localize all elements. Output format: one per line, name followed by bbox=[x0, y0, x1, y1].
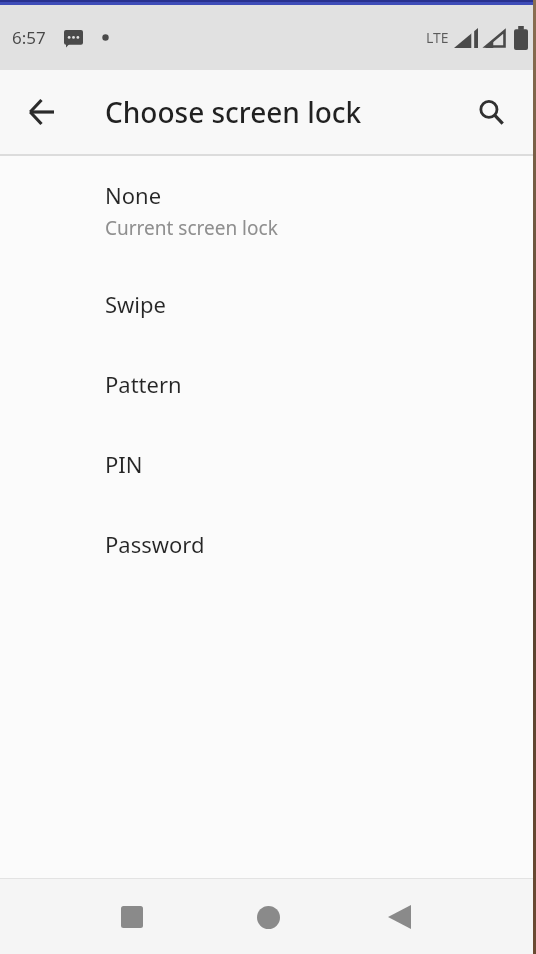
staticText: PIN bbox=[105, 449, 143, 479]
button[interactable]: Pattern bbox=[0, 344, 536, 424]
button[interactable] bbox=[374, 892, 424, 942]
staticText: None bbox=[105, 180, 162, 210]
button[interactable] bbox=[16, 86, 68, 138]
staticText: Pattern bbox=[105, 369, 182, 399]
staticText: 6:57 bbox=[12, 26, 46, 49]
button[interactable] bbox=[243, 892, 293, 942]
button[interactable]: PIN bbox=[0, 424, 536, 504]
button[interactable]: None bbox=[0, 156, 536, 264]
staticText: Choose screen lock bbox=[105, 93, 362, 131]
button[interactable]: Swipe bbox=[0, 264, 536, 344]
button[interactable] bbox=[468, 89, 514, 135]
staticText: Password bbox=[105, 529, 205, 559]
button[interactable] bbox=[107, 892, 157, 942]
staticText: Current screen lock bbox=[105, 215, 278, 241]
staticText: LTE bbox=[426, 28, 449, 47]
staticText: Swipe bbox=[105, 289, 166, 319]
button[interactable]: Password bbox=[0, 504, 536, 584]
